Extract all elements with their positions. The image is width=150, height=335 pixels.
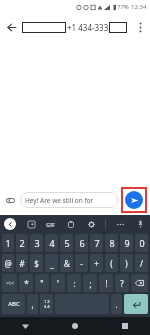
staticText: 5 (64, 237, 70, 249)
button[interactable]: ' (51, 274, 65, 292)
button[interactable]: Numbers (40, 294, 53, 314)
staticText: : (73, 278, 76, 289)
button[interactable]: Collapse toolbar (4, 218, 16, 230)
button[interactable]: Backspace (131, 274, 148, 292)
button[interactable]: Send (125, 191, 143, 209)
staticText: +1 434-333 (67, 22, 109, 33)
staticText: ) (125, 258, 128, 269)
button[interactable]: : (67, 274, 81, 292)
button[interactable]: * (19, 274, 33, 292)
button[interactable]: - (75, 254, 88, 272)
other: Numbers (44, 299, 50, 309)
staticText: _ (50, 258, 54, 269)
button[interactable]: 9 (120, 234, 133, 252)
button[interactable]: Recents (100, 317, 150, 335)
staticText: =\< (6, 280, 14, 287)
button[interactable]: Home (50, 317, 100, 335)
button[interactable]: Attach (0, 190, 20, 210)
button[interactable]: ? (115, 274, 129, 292)
button[interactable]: More options (130, 17, 150, 37)
button[interactable]: 1 (2, 234, 14, 252)
button[interactable]: Voice input (134, 218, 146, 230)
staticText: 3 4 (44, 304, 50, 309)
button[interactable]: =\< (2, 274, 17, 292)
button[interactable]: GIF (45, 220, 57, 229)
staticText: 2 (19, 237, 25, 249)
other: Enter (132, 301, 141, 308)
staticText: ' (57, 278, 59, 289)
staticText: ! (105, 278, 108, 289)
button[interactable]: , (27, 294, 38, 314)
staticText: 4 (49, 237, 55, 249)
button[interactable]: ABC (2, 294, 25, 314)
staticText: 0 (139, 237, 145, 249)
staticText: ABC (8, 300, 20, 308)
staticText: 7 (94, 237, 100, 249)
staticText: + (94, 258, 99, 269)
button[interactable]: / (135, 254, 148, 272)
button[interactable]: $ (30, 254, 43, 272)
staticText: ( (110, 258, 113, 269)
button[interactable]: ! (99, 274, 113, 292)
staticText: . (115, 299, 118, 310)
staticText: , (31, 299, 34, 310)
staticText: ? (120, 278, 124, 289)
button[interactable]: # (16, 254, 28, 272)
staticText: Hey! Are we still on for tonight? (25, 196, 118, 205)
button[interactable]: Back (0, 16, 22, 38)
staticText: 6 (79, 237, 85, 249)
button[interactable]: . (111, 294, 122, 314)
button[interactable]: " (35, 274, 49, 292)
staticText: & (64, 258, 70, 269)
button[interactable]: Back (0, 317, 50, 335)
button[interactable]: 5 (60, 234, 73, 252)
button[interactable]: More (114, 218, 126, 230)
button[interactable]: 8 (105, 234, 118, 252)
button[interactable]: 4 (45, 234, 58, 252)
button[interactable]: ) (120, 254, 133, 272)
button[interactable]: ; (83, 274, 97, 292)
staticText: 8 (109, 237, 115, 249)
button[interactable]: & (60, 254, 73, 272)
staticText: 3 (34, 237, 40, 249)
staticText: # (19, 258, 25, 269)
staticText: - (80, 258, 83, 269)
staticText: " (40, 278, 44, 289)
staticText: 12:34 (131, 3, 147, 11)
button[interactable]: 3 (30, 234, 43, 252)
button[interactable]: _ (45, 254, 58, 272)
button[interactable]: 6 (75, 234, 88, 252)
staticText: 9 (124, 237, 130, 249)
other: Backspace (135, 280, 144, 286)
staticText: 1 2 (44, 299, 50, 304)
button[interactable]: Settings (85, 218, 97, 230)
staticText: ; (89, 278, 92, 289)
button[interactable]: Hey! Are we still on for tonight? (20, 192, 118, 208)
staticText: GIF (46, 221, 56, 228)
button[interactable]: + (90, 254, 103, 272)
staticText: $ (34, 258, 39, 269)
staticText: 77% (117, 3, 129, 11)
staticText: * (24, 278, 29, 289)
button[interactable]: Enter (124, 294, 148, 314)
staticText: / (140, 258, 143, 269)
button[interactable]: 2 (16, 234, 28, 252)
button[interactable]: Clipboard (65, 218, 77, 230)
staticText: 1 (5, 237, 11, 249)
staticText: @ (4, 258, 12, 269)
button[interactable]: 0 (135, 234, 148, 252)
button[interactable]: 7 (90, 234, 103, 252)
button[interactable]: Stickers (25, 218, 37, 230)
button[interactable]: @ (2, 254, 14, 272)
button[interactable]: ( (105, 254, 118, 272)
